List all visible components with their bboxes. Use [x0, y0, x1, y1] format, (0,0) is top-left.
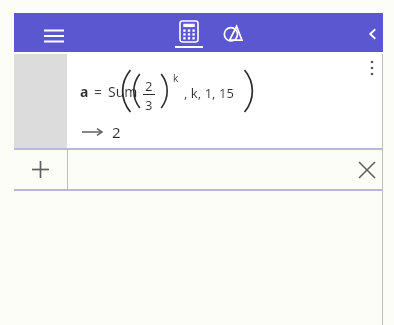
- button[interactable]: [67, 54, 383, 148]
- button[interactable]: Add row: [14, 150, 67, 189]
- staticText: k: [173, 71, 179, 85]
- button[interactable]: Clear: [354, 157, 380, 183]
- staticText: 2: [145, 77, 153, 95]
- staticText: Sum: [108, 82, 138, 101]
- button[interactable]: Calculator: [171, 15, 207, 51]
- button[interactable]: More options: [360, 56, 384, 80]
- button[interactable]: [68, 150, 383, 189]
- button[interactable]: Menu: [38, 20, 70, 52]
- staticText: 2: [112, 122, 121, 142]
- button[interactable]: Back: [358, 19, 388, 49]
- staticText: =: [94, 82, 103, 101]
- staticText: , k, 1, 15: [184, 84, 234, 102]
- button[interactable]: Geometry: [217, 16, 251, 50]
- staticText: a: [80, 82, 89, 101]
- staticText: 3: [145, 96, 153, 114]
